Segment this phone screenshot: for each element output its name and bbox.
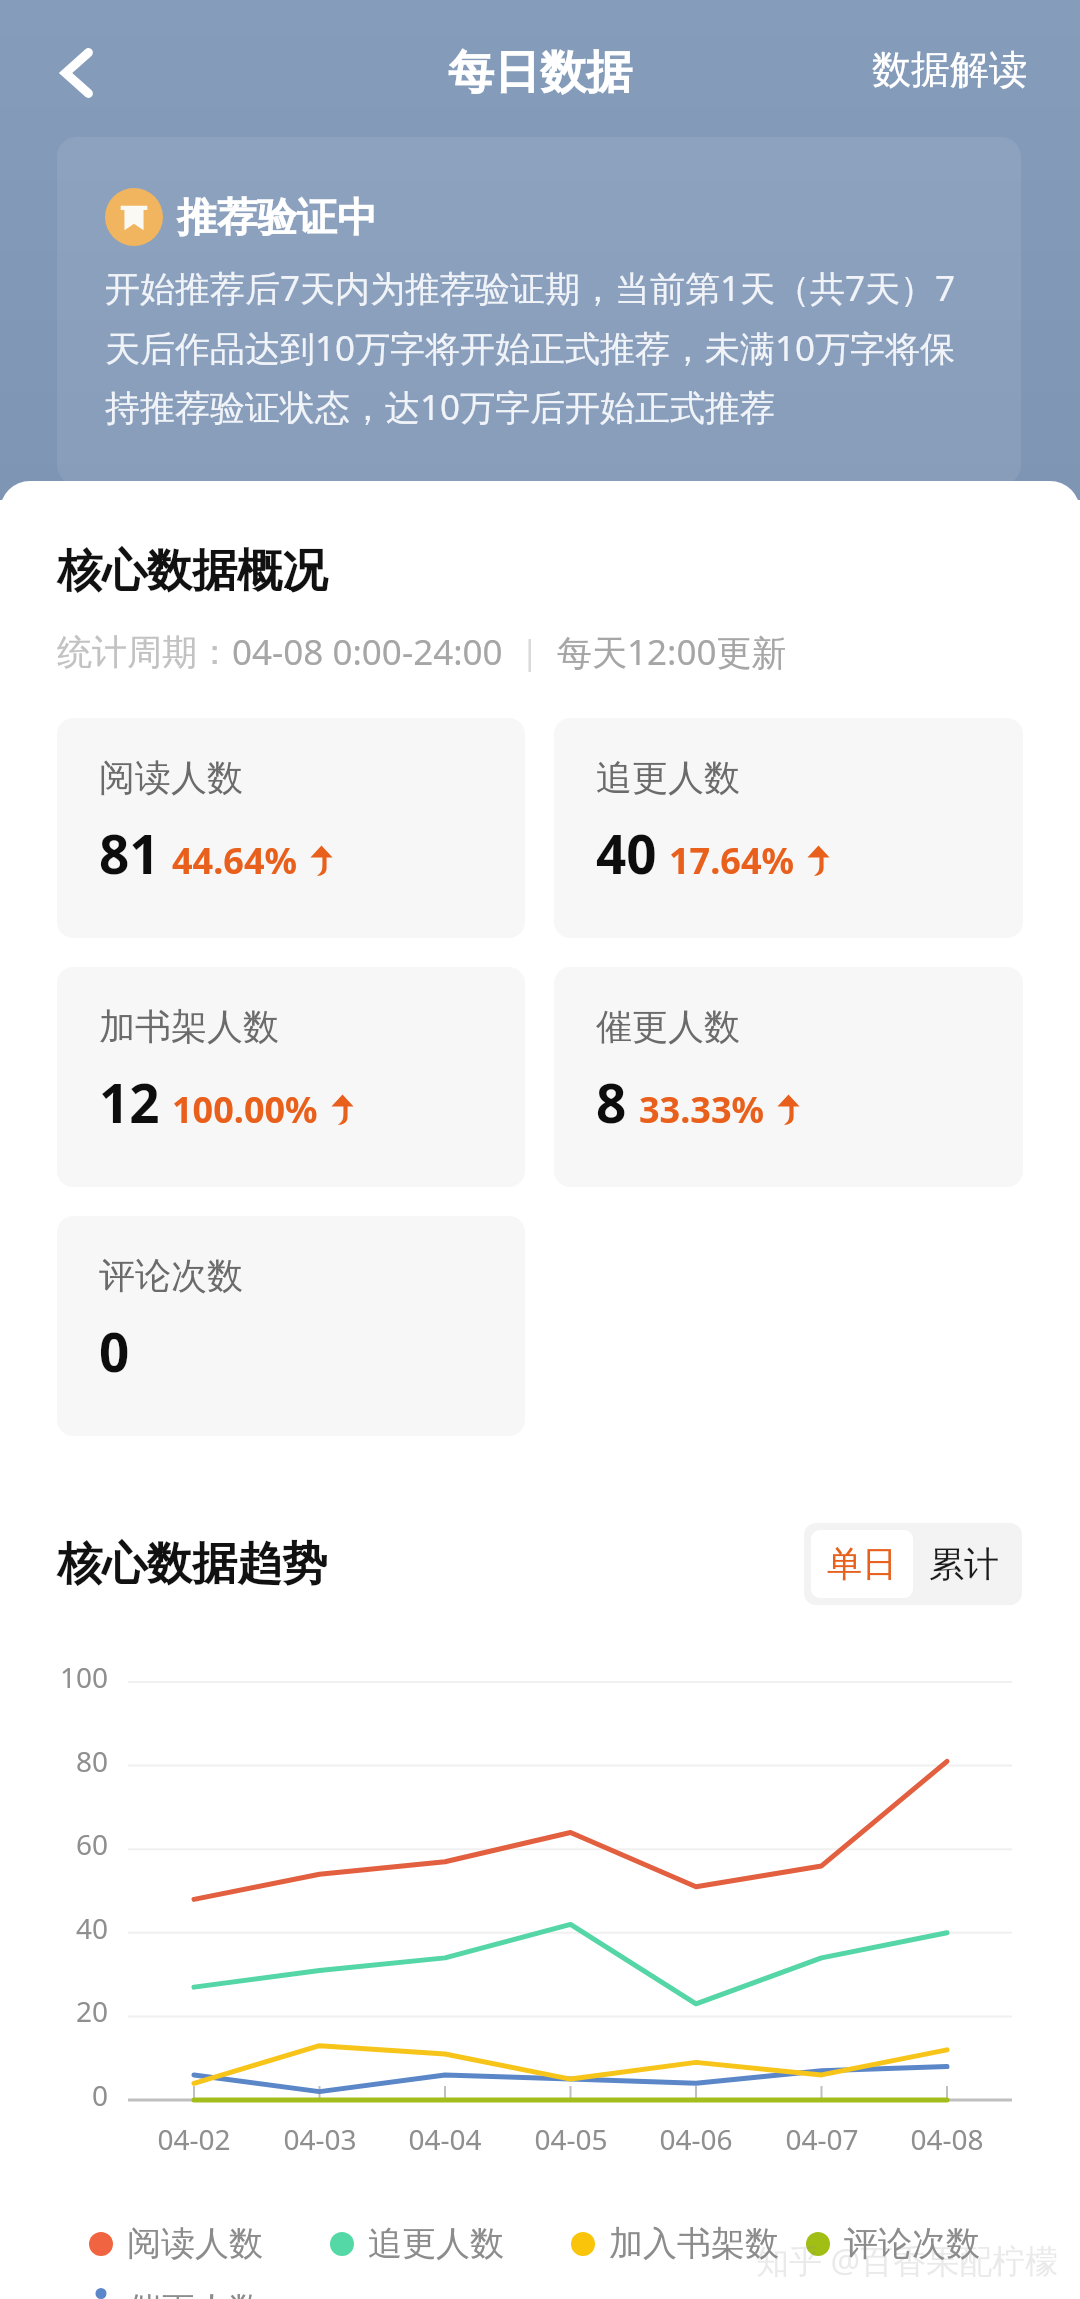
button[interactable]: 催更人数	[554, 967, 1023, 1187]
button[interactable]: 阅读人数	[57, 718, 525, 938]
staticText: 0	[0, 2076, 108, 2114]
staticText: 每日数据	[448, 44, 632, 102]
staticText: 04-05	[511, 2120, 631, 2158]
staticText: 8	[596, 1066, 627, 1138]
button[interactable]: 数据解读	[866, 35, 1034, 104]
staticText: 40	[0, 1909, 108, 1947]
staticText: 80	[0, 1742, 108, 1780]
staticText: 17.64%	[669, 836, 794, 885]
staticText: 04-06	[636, 2120, 756, 2158]
button[interactable]: 追更人数	[554, 718, 1023, 938]
staticText: 0	[99, 1315, 130, 1387]
button[interactable]: 单日	[811, 1530, 913, 1598]
staticText: 04-03	[260, 2120, 380, 2158]
button[interactable]: 评论次数	[57, 1216, 525, 1436]
button[interactable]: Back	[32, 33, 112, 113]
staticText: 核心数据概况	[57, 543, 327, 600]
staticText: |	[521, 630, 539, 674]
staticText: 评论次数	[99, 1253, 243, 1298]
staticText: 阅读人数	[99, 755, 243, 800]
staticText: 44.64%	[172, 836, 297, 885]
staticText: 20	[0, 1992, 108, 2030]
staticText: 40	[596, 817, 657, 889]
staticText: 12	[99, 1066, 160, 1138]
staticText: 核心数据趋势	[57, 1536, 327, 1593]
staticText: 开始推荐后7天内为推荐验证期，当前第1天（共7天）7天后作品达到10万字将开始正…	[105, 264, 979, 430]
staticText: 04-08 0:00-24:00	[232, 628, 503, 676]
button[interactable]: 累计	[913, 1530, 1015, 1598]
staticText: 04-02	[134, 2120, 254, 2158]
staticText: 催更人数	[596, 1004, 740, 1049]
staticText: 单日	[827, 1542, 897, 1586]
staticText: 催更人数	[127, 2288, 263, 2299]
staticText: 加书架人数	[99, 1004, 279, 1049]
staticText: 统计周期：	[57, 630, 232, 674]
staticText: 数据解读	[872, 45, 1028, 94]
staticText: 81	[99, 817, 160, 889]
staticText: 04-07	[762, 2120, 882, 2158]
staticText: 60	[0, 1825, 108, 1863]
staticText: 04-04	[385, 2120, 505, 2158]
staticText: 推荐验证中	[177, 192, 377, 242]
staticText: 累计	[929, 1542, 999, 1586]
staticText: 评论次数	[844, 2222, 980, 2265]
staticText: 100.00%	[172, 1085, 318, 1134]
staticText: 每天12:00更新	[557, 628, 787, 676]
staticText: 追更人数	[596, 755, 740, 800]
staticText: 知乎 @百香果配柠檬	[756, 2238, 1059, 2283]
staticText: 33.33%	[639, 1085, 764, 1134]
button[interactable]: 加书架人数	[57, 967, 525, 1187]
staticText: 04-08	[887, 2120, 1007, 2158]
staticText: 加入书架数	[609, 2222, 779, 2265]
staticText: 100	[0, 1658, 108, 1696]
staticText: 追更人数	[368, 2222, 504, 2265]
staticText: 阅读人数	[127, 2222, 263, 2265]
